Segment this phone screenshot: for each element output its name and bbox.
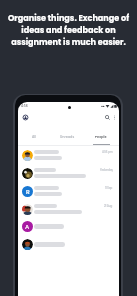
staticText: Organise things. Exchange of ideas and f… [4,12,133,48]
staticText: Yesterday [100,168,113,172]
staticText: 4:56 pm [102,150,113,154]
staticText: Unreads [60,134,75,139]
staticText: All [32,134,36,139]
staticText: 4:56 [21,104,28,108]
staticText: 21 Aug [104,204,113,208]
button[interactable]: Search [102,112,112,122]
button[interactable]: 4:56 pm [18,146,119,164]
staticText: People [95,134,107,139]
button[interactable]: All [22,134,46,145]
button[interactable]: Unreads [55,134,79,145]
staticText: R [26,188,30,196]
button[interactable] [18,235,119,253]
button[interactable]: A [18,217,119,235]
button[interactable]: People [89,134,113,145]
button[interactable]: Account [20,112,30,122]
staticText: 11 Sep [105,186,113,190]
button[interactable]: More options [109,112,119,122]
staticText: A [25,223,30,231]
button[interactable]: Yesterday [18,164,119,182]
button[interactable]: R [18,182,119,200]
button[interactable]: 21 Aug [18,200,119,218]
